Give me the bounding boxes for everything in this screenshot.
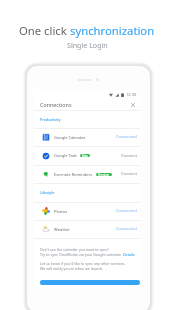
- other: Weather: [42, 225, 50, 233]
- staticText: Single Login: [67, 40, 108, 50]
- staticText: Try to sync TimeBlocks via your Google c…: [40, 252, 123, 257]
- staticText: Productivity: [40, 117, 61, 122]
- other: Evernote: [42, 170, 50, 178]
- staticText: One click: [19, 23, 70, 38]
- staticText: Premium: [98, 173, 110, 176]
- staticText: Connect: [121, 171, 137, 177]
- button[interactable]: Google Calendar: [34, 128, 140, 146]
- staticText: Let us know if you'd like to sync any ot…: [40, 261, 126, 266]
- button[interactable]: Weather: [34, 220, 140, 238]
- button[interactable]: Google Tasks: [34, 146, 140, 165]
- button[interactable]: Details: [123, 252, 135, 257]
- staticText: Google Task: [54, 153, 77, 158]
- staticText: We will notify you at when we launch.: [40, 266, 104, 271]
- staticText: Photos: [54, 209, 68, 214]
- button[interactable]: Evernote: [34, 165, 140, 183]
- staticText: 12:30: [126, 92, 137, 97]
- button[interactable]: Close: [129, 101, 137, 109]
- other: Google Tasks: [42, 152, 50, 160]
- staticText: Connected: [116, 208, 137, 214]
- button[interactable]: [40, 280, 140, 285]
- staticText: Connected: [116, 134, 137, 140]
- staticText: synchronization: [70, 23, 155, 38]
- button[interactable]: Google Photos: [34, 202, 140, 220]
- staticText: Evernote Reminders: [54, 172, 93, 177]
- staticText: Beta: [82, 154, 88, 157]
- staticText: Weather: [54, 227, 70, 232]
- staticText: Lifestyle: [40, 190, 55, 195]
- other: Google Calendar: [42, 133, 50, 141]
- staticText: Connect: [121, 153, 137, 159]
- staticText: Don't see the calendar you want to sync?: [40, 247, 109, 252]
- staticText: Connections: [40, 101, 72, 108]
- staticText: Connected: [116, 226, 137, 232]
- staticText: Google Calendar: [54, 135, 86, 140]
- other: Google Photos: [42, 207, 50, 215]
